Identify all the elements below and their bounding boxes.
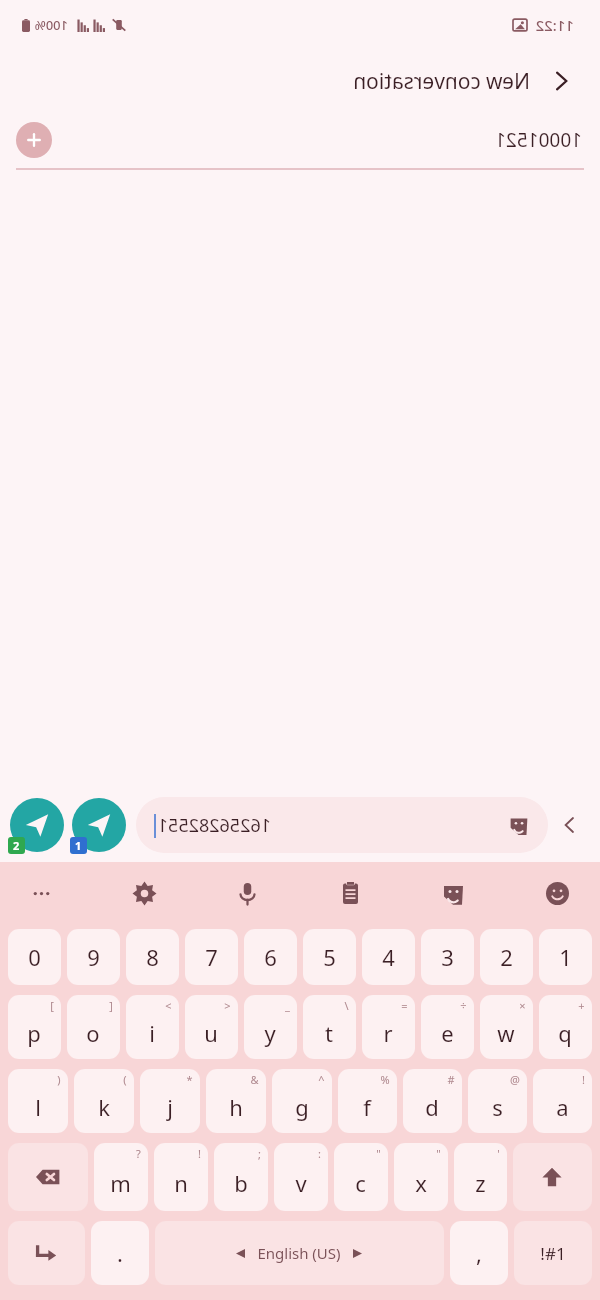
- button[interactable]: Stickers: [136, 797, 548, 853]
- button[interactable]: _: [244, 995, 297, 1059]
- staticText: :: [318, 1146, 321, 1161]
- staticText: !: [198, 1146, 201, 1161]
- button[interactable]: :: [274, 1143, 328, 1211]
- button[interactable]: @: [468, 1069, 527, 1133]
- button[interactable]: Expand: [548, 803, 592, 847]
- staticText: z: [475, 1168, 486, 1198]
- staticText: 2: [13, 838, 20, 853]
- button[interactable]: Clipboard: [331, 873, 371, 913]
- button[interactable]: 3: [421, 929, 474, 985]
- staticText: ': [497, 1146, 500, 1161]
- button[interactable]: Emoji: [538, 873, 578, 913]
- staticText: (: [123, 1072, 127, 1087]
- button[interactable]: 7: [185, 929, 238, 985]
- button[interactable]: !: [533, 1069, 592, 1133]
- button[interactable]: ': [454, 1143, 507, 1211]
- staticText: &: [250, 1072, 259, 1087]
- button[interactable]: ×: [480, 995, 533, 1059]
- button[interactable]: &: [206, 1069, 266, 1133]
- staticText: *: [186, 1072, 193, 1087]
- staticText: 0: [28, 942, 41, 972]
- button[interactable]: Send with SIM 2: [8, 796, 66, 854]
- staticText: x: [415, 1168, 427, 1198]
- button[interactable]: [: [8, 995, 61, 1059]
- button[interactable]: 6: [244, 929, 297, 985]
- staticText: <: [165, 998, 172, 1013]
- staticText: b: [234, 1168, 248, 1198]
- staticText: #: [447, 1072, 455, 1087]
- button[interactable]: ,: [450, 1221, 508, 1285]
- button[interactable]: =: [362, 995, 415, 1059]
- button[interactable]: Voice input: [228, 873, 268, 913]
- button[interactable]: Enter: [8, 1221, 85, 1285]
- staticText: !#1: [540, 1242, 566, 1265]
- button[interactable]: <: [126, 995, 179, 1059]
- staticText: 11:22: [535, 15, 574, 35]
- staticText: ?: [136, 1146, 141, 1161]
- button[interactable]: .: [91, 1221, 149, 1285]
- staticText: m: [110, 1168, 131, 1198]
- staticText: 6: [264, 942, 277, 972]
- staticText: .: [117, 1238, 123, 1268]
- staticText: +: [578, 998, 585, 1013]
- button[interactable]: 2: [480, 929, 533, 985]
- staticText: q: [558, 1018, 572, 1048]
- button[interactable]: ": [394, 1143, 448, 1211]
- staticText: >: [224, 998, 231, 1013]
- button[interactable]: 5: [303, 929, 356, 985]
- button[interactable]: 9: [67, 929, 120, 985]
- staticText: !: [582, 1072, 585, 1087]
- staticText: w: [497, 1018, 515, 1048]
- staticText: h: [229, 1092, 243, 1122]
- staticText: r: [383, 1018, 393, 1048]
- button[interactable]: \: [303, 995, 356, 1059]
- button[interactable]: 4: [362, 929, 415, 985]
- staticText: \: [344, 998, 349, 1013]
- button[interactable]: (: [74, 1069, 134, 1133]
- button[interactable]: !#1: [514, 1221, 592, 1285]
- button[interactable]: %: [338, 1069, 397, 1133]
- button[interactable]: ): [8, 1069, 68, 1133]
- staticText: 2: [500, 942, 513, 972]
- button[interactable]: ;: [214, 1143, 268, 1211]
- button[interactable]: 8: [126, 929, 179, 985]
- staticText: ": [436, 1146, 441, 1161]
- staticText: 100%: [34, 16, 68, 34]
- button[interactable]: Stickers: [504, 810, 534, 840]
- button[interactable]: >: [185, 995, 238, 1059]
- button[interactable]: ]: [67, 995, 120, 1059]
- staticText: ": [376, 1146, 381, 1161]
- button[interactable]: #: [403, 1069, 462, 1133]
- staticText: 1: [75, 838, 82, 853]
- button[interactable]: Backspace: [8, 1143, 88, 1211]
- button[interactable]: 1: [539, 929, 592, 985]
- staticText: 16256282551: [157, 813, 271, 838]
- button[interactable]: More options: [22, 873, 62, 913]
- staticText: p: [27, 1018, 41, 1048]
- button[interactable]: 0: [8, 929, 61, 985]
- button[interactable]: *: [140, 1069, 200, 1133]
- staticText: 10001521: [62, 127, 582, 153]
- button[interactable]: ^: [272, 1069, 332, 1133]
- staticText: d: [425, 1092, 439, 1122]
- staticText: 5: [323, 942, 336, 972]
- button[interactable]: ?: [94, 1143, 148, 1211]
- button[interactable]: English (US): [155, 1221, 444, 1285]
- staticText: ÷: [460, 998, 467, 1013]
- button[interactable]: !: [154, 1143, 208, 1211]
- button[interactable]: Keyboard settings: [125, 873, 165, 913]
- button[interactable]: Stickers: [434, 873, 474, 913]
- button[interactable]: ": [334, 1143, 388, 1211]
- staticText: _: [285, 998, 290, 1013]
- staticText: ]: [109, 998, 113, 1013]
- button[interactable]: Back: [536, 56, 586, 106]
- staticText: English (US): [257, 1243, 341, 1263]
- button[interactable]: ÷: [421, 995, 474, 1059]
- button[interactable]: +: [539, 995, 592, 1059]
- staticText: t: [325, 1018, 333, 1048]
- button[interactable]: Shift: [513, 1143, 592, 1211]
- button[interactable]: Add recipient: [16, 122, 52, 158]
- staticText: i: [149, 1018, 155, 1048]
- button[interactable]: Send with SIM 1: [70, 796, 128, 854]
- staticText: 3: [441, 942, 454, 972]
